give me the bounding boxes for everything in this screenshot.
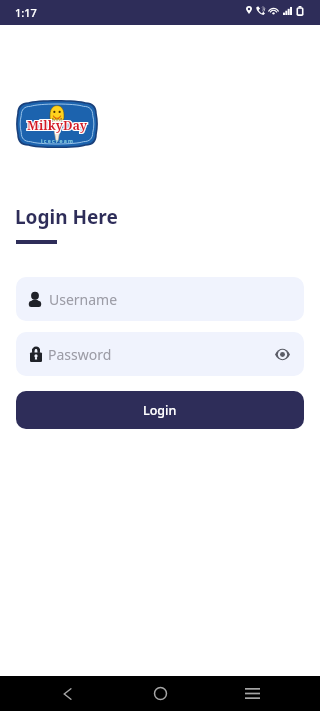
staticText: Login <box>143 402 177 419</box>
button[interactable]: Recent apps <box>230 676 274 711</box>
staticText: 1:17 <box>15 5 37 20</box>
staticText: Login Here <box>15 204 118 230</box>
button[interactable]: Password <box>16 332 304 376</box>
staticText: MilkyDay <box>27 117 87 134</box>
button[interactable]: Home <box>138 676 182 711</box>
staticText: Password <box>48 345 112 364</box>
button[interactable]: Show password <box>270 344 290 364</box>
button[interactable]: Login <box>16 391 304 429</box>
button[interactable]: Back <box>45 676 89 711</box>
staticText: i c e c r e a m <box>41 138 73 145</box>
staticText: MilkyDay <box>27 117 87 134</box>
staticText: Username <box>49 290 118 309</box>
button[interactable]: Username <box>16 277 304 321</box>
